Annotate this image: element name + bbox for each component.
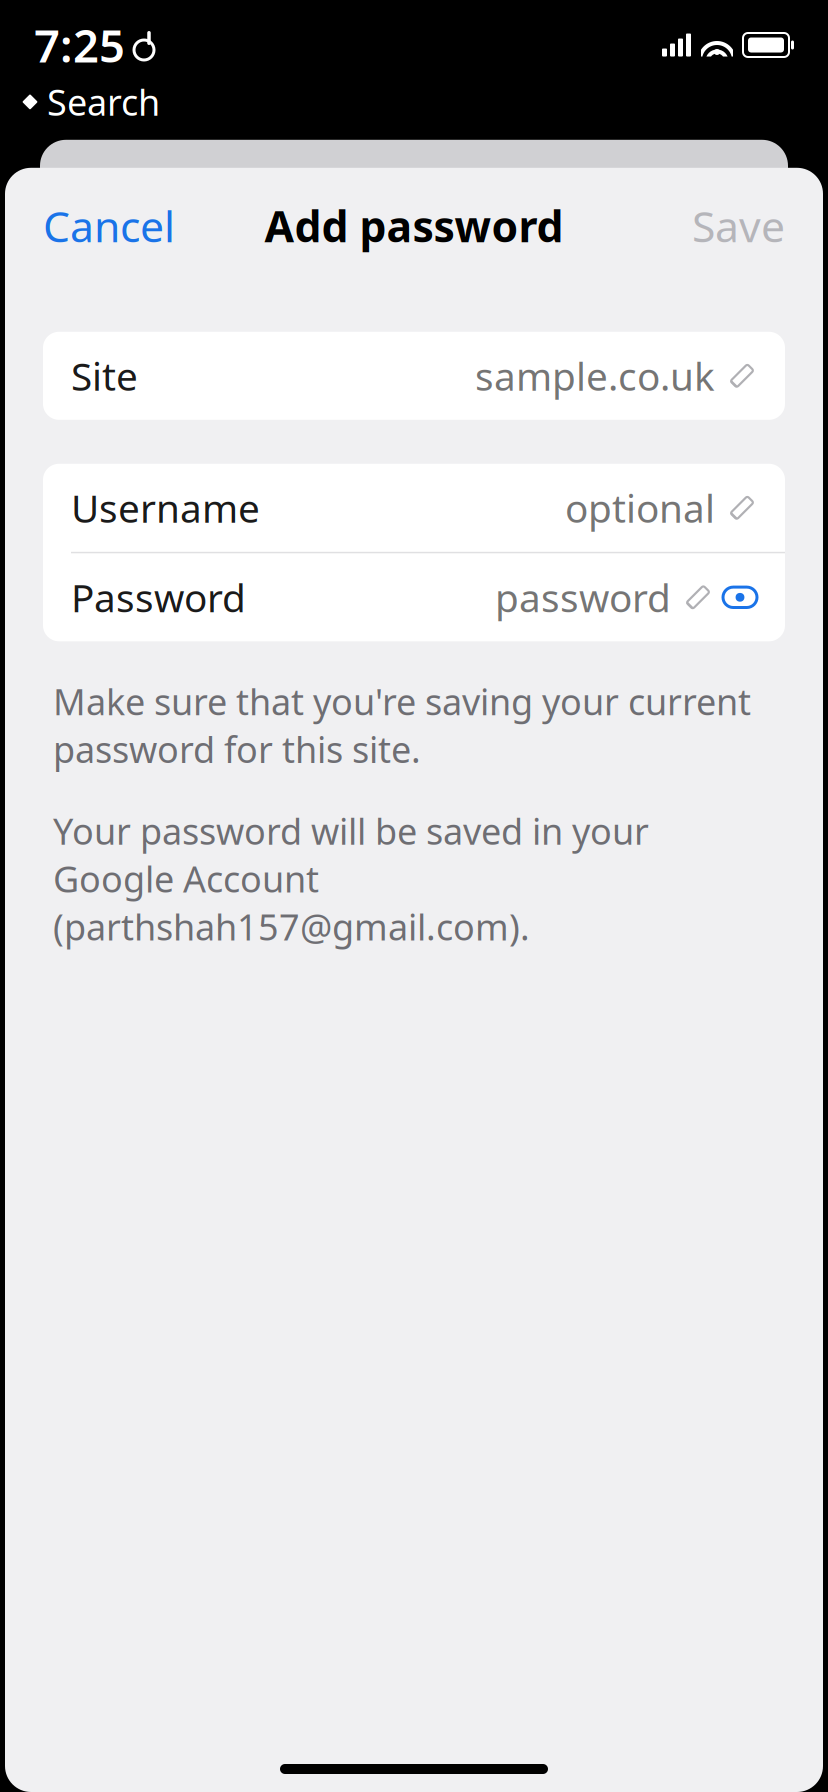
- staticText: Cancel: [43, 197, 175, 254]
- staticText: sample.co.uk: [475, 350, 715, 401]
- button[interactable]: Password: [43, 553, 785, 641]
- button[interactable]: Cancel: [35, 189, 183, 262]
- staticText: Save: [692, 197, 785, 254]
- button[interactable]: Search: [22, 78, 160, 126]
- staticText: Make sure that you're saving your curren…: [53, 677, 751, 773]
- staticText: Site: [71, 350, 138, 401]
- button[interactable]: Site: [43, 332, 785, 420]
- staticText: Password: [71, 572, 246, 623]
- staticText: 7:25: [34, 15, 125, 75]
- staticText: optional: [565, 482, 715, 533]
- staticText: Search: [47, 78, 160, 126]
- staticText: Your password will be saved in your Goog…: [53, 807, 649, 950]
- button[interactable]: Username: [43, 464, 785, 552]
- staticText: password: [495, 572, 671, 623]
- button[interactable]: Save: [684, 189, 793, 262]
- staticText: Username: [71, 482, 260, 533]
- staticText: Add password: [264, 197, 563, 254]
